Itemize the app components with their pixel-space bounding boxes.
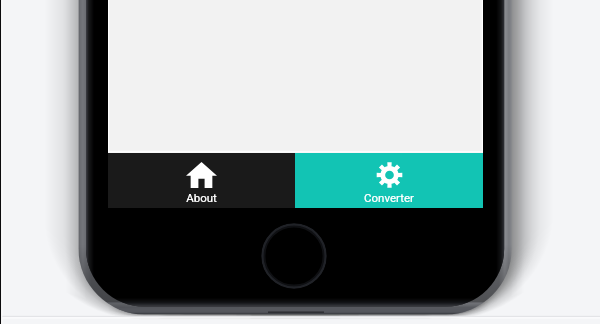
button[interactable]: Home <box>261 223 327 289</box>
button[interactable]: Converter <box>295 153 483 208</box>
button[interactable]: About <box>108 153 295 208</box>
staticText: Converter <box>364 191 414 204</box>
staticText: About <box>186 191 217 204</box>
